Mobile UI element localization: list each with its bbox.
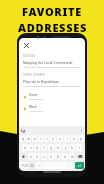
button[interactable]: v <box>48 153 54 160</box>
staticText: r <box>40 137 42 141</box>
button[interactable]: o <box>71 135 77 142</box>
staticText: . <box>71 164 72 168</box>
button[interactable]: g <box>48 144 54 151</box>
button[interactable]: k <box>69 144 75 151</box>
staticText: / <box>38 164 40 168</box>
staticText: x <box>36 155 38 159</box>
button[interactable]: s <box>28 144 33 151</box>
button[interactable]: Backspace <box>76 153 84 160</box>
staticText: a <box>24 146 26 150</box>
staticText: c <box>43 155 45 159</box>
staticText: o <box>73 137 75 141</box>
button[interactable]: e <box>32 135 37 142</box>
button[interactable]: / <box>36 162 41 169</box>
staticText: g <box>50 146 52 150</box>
button[interactable]: . <box>69 162 74 169</box>
staticText: k <box>71 146 73 150</box>
staticText: p <box>80 137 82 141</box>
button[interactable]: l <box>76 144 82 151</box>
staticText: Place de la Republique <box>23 79 59 84</box>
button[interactable]: ADDRESS <box>23 54 81 68</box>
staticText: Add address <box>29 97 43 100</box>
staticText: Mapping the Local Commercial <box>23 60 73 65</box>
button[interactable]: y <box>50 135 56 142</box>
button[interactable]: Shift <box>20 153 27 160</box>
staticText: e <box>34 137 36 141</box>
staticText: s <box>30 146 32 150</box>
button[interactable]: Home <box>23 93 81 100</box>
button[interactable]: x <box>34 153 40 160</box>
button[interactable]: a <box>22 144 27 151</box>
staticText: m <box>71 155 74 159</box>
staticText: f <box>43 146 45 150</box>
button[interactable]: d <box>34 144 40 151</box>
staticText: q <box>22 137 24 141</box>
staticText: n <box>64 155 66 159</box>
button[interactable]: t <box>44 135 49 142</box>
staticText: i <box>67 137 68 141</box>
button[interactable]: n <box>62 153 68 160</box>
staticText: j <box>65 146 66 150</box>
staticText: Home <box>29 93 38 97</box>
staticText: w <box>27 137 30 141</box>
staticText: ADDRESS <box>23 54 36 58</box>
button[interactable]: i <box>64 135 70 142</box>
button[interactable]: w <box>26 135 31 142</box>
staticText: y <box>52 137 54 141</box>
button[interactable]: r <box>38 135 43 142</box>
button[interactable]: z <box>28 153 33 160</box>
staticText: v <box>50 155 52 159</box>
staticText: d <box>36 146 38 150</box>
staticText: b <box>57 155 59 159</box>
button[interactable]: p <box>78 135 84 142</box>
button[interactable]: Work <box>23 105 81 112</box>
button[interactable]: m <box>69 153 75 160</box>
button[interactable]: Enter <box>75 162 84 169</box>
staticText: u <box>59 137 61 141</box>
staticText: ADDRESSES <box>18 20 87 35</box>
staticText: FAVORITE <box>22 4 82 19</box>
button[interactable]: Emoji <box>29 162 35 169</box>
staticText: STREET NUMBER <box>23 73 45 77</box>
button[interactable]: h <box>55 144 61 151</box>
staticText: z <box>30 155 32 159</box>
staticText: t <box>46 137 48 141</box>
button[interactable]: More options <box>80 129 83 132</box>
staticText: Work <box>29 105 37 109</box>
button[interactable]: Close <box>23 42 30 49</box>
button[interactable]: STREET NUMBER <box>23 73 81 87</box>
staticText: h <box>57 146 59 150</box>
button[interactable]: j <box>62 144 68 151</box>
staticText: ?123 <box>21 164 28 168</box>
button[interactable]: ?123 <box>20 162 28 169</box>
button[interactable]: Google <box>21 129 25 133</box>
button[interactable]: c <box>41 153 47 160</box>
button[interactable]: f <box>41 144 47 151</box>
staticText: l <box>79 146 80 150</box>
button[interactable]: u <box>57 135 63 142</box>
staticText: Add address <box>29 109 43 112</box>
button[interactable]: b <box>55 153 61 160</box>
button[interactable]: q <box>20 135 25 142</box>
